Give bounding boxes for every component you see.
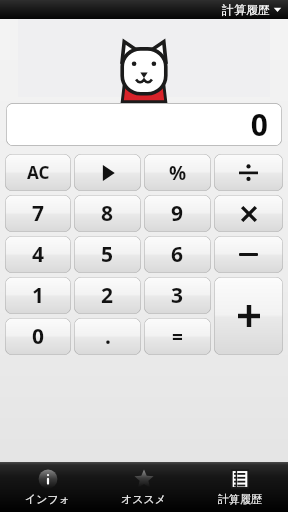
- button[interactable]: 2: [74, 277, 141, 314]
- staticText: 0: [250, 104, 268, 145]
- button[interactable]: 計算履歴: [216, 2, 288, 17]
- other: Play: [100, 165, 116, 181]
- staticText: 4: [32, 240, 45, 269]
- other: Multiply: [241, 206, 257, 222]
- other: インフォ: [38, 469, 58, 489]
- staticText: .: [105, 322, 111, 351]
- staticText: AC: [27, 161, 50, 184]
- staticText: 1: [32, 281, 45, 310]
- other: Plus: [238, 305, 260, 327]
- button[interactable]: AC: [5, 154, 71, 191]
- button[interactable]: .: [74, 318, 141, 355]
- staticText: 8: [101, 199, 114, 228]
- staticText: オススメ: [121, 492, 167, 506]
- staticText: 9: [171, 199, 184, 228]
- button[interactable]: 計算履歴: [192, 465, 288, 510]
- staticText: 2: [101, 281, 114, 310]
- button[interactable]: 3: [144, 277, 211, 314]
- other: Divide: [239, 163, 258, 182]
- button[interactable]: %: [144, 154, 211, 191]
- other: Minus: [239, 245, 258, 264]
- button[interactable]: 8: [74, 195, 141, 232]
- button[interactable]: 6: [144, 236, 211, 273]
- button[interactable]: 1: [5, 277, 71, 314]
- other: オススメ: [134, 469, 154, 489]
- button[interactable]: Multiply: [214, 195, 283, 232]
- other: 計算履歴: [230, 469, 250, 489]
- button[interactable]: =: [144, 318, 211, 355]
- button[interactable]: 7: [5, 195, 71, 232]
- button[interactable]: オススメ: [96, 465, 192, 510]
- staticText: 7: [32, 199, 45, 228]
- button[interactable]: Plus: [214, 277, 283, 355]
- staticText: 6: [171, 240, 184, 269]
- button[interactable]: Play: [74, 154, 141, 191]
- staticText: 計算履歴: [218, 492, 262, 506]
- staticText: %: [169, 160, 187, 186]
- button[interactable]: 0: [5, 318, 71, 355]
- button[interactable]: Divide: [214, 154, 283, 191]
- button[interactable]: 0: [6, 103, 282, 146]
- button[interactable]: 9: [144, 195, 211, 232]
- staticText: 0: [32, 322, 45, 351]
- staticText: =: [172, 324, 183, 350]
- button[interactable]: Minus: [214, 236, 283, 273]
- staticText: 3: [171, 281, 184, 310]
- staticText: インフォ: [25, 492, 71, 506]
- button[interactable]: インフォ: [0, 465, 96, 510]
- button[interactable]: 5: [74, 236, 141, 273]
- staticText: 計算履歴: [222, 2, 270, 17]
- staticText: 5: [101, 240, 114, 269]
- button[interactable]: 4: [5, 236, 71, 273]
